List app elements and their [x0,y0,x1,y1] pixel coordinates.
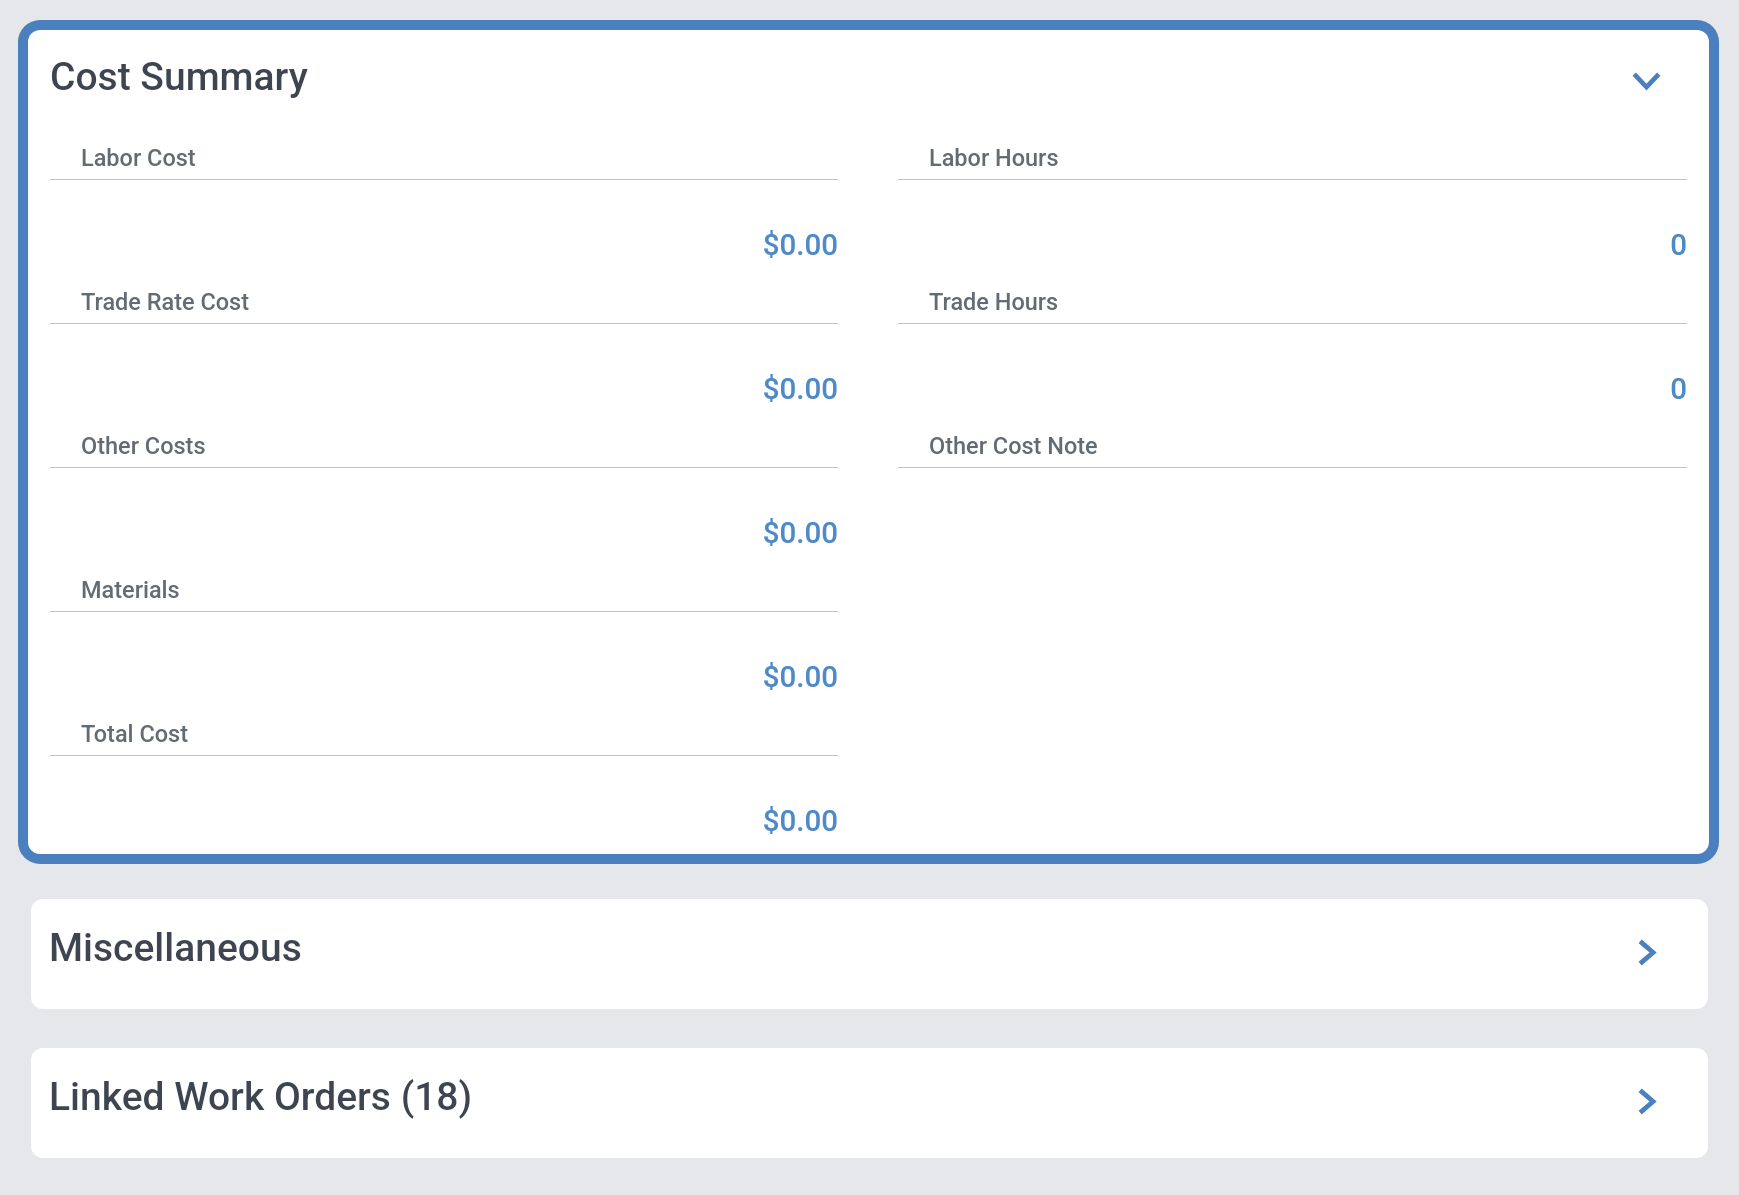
staticText: Materials [81,576,180,604]
other: Open Miscellaneous [1617,922,1677,982]
staticText: $0.00 [50,372,838,407]
staticText: Linked Work Orders (18) [49,1074,473,1120]
staticText: 0 [898,228,1687,263]
staticText: Miscellaneous [49,925,302,971]
button[interactable]: Cost Summary [28,30,1709,142]
staticText: Other Cost Note [929,432,1098,460]
button[interactable]: Collapse Cost Summary [1613,48,1679,114]
staticText: Trade Rate Cost [81,288,250,316]
other: Open Linked Work Orders [1617,1071,1677,1131]
button[interactable]: Linked Work Orders (18) [31,1048,1708,1158]
staticText: $0.00 [50,228,838,263]
staticText: 0 [898,372,1687,407]
staticText: Labor Hours [929,144,1059,172]
staticText: Cost Summary [50,54,308,100]
staticText: Labor Cost [81,144,196,172]
staticText: $0.00 [50,804,838,839]
staticText: $0.00 [50,660,838,695]
button[interactable]: Miscellaneous [31,899,1708,1009]
staticText: $0.00 [50,516,838,551]
staticText: Trade Hours [929,288,1059,316]
staticText: Other Costs [81,432,206,460]
staticText: Total Cost [81,720,188,748]
